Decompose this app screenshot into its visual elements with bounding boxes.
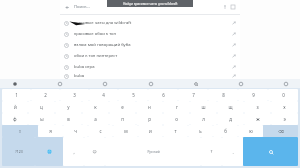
staticText: б bbox=[224, 128, 227, 134]
button[interactable]: щ bbox=[217, 101, 244, 113]
button[interactable]: Profile bbox=[146, 79, 155, 88]
button[interactable]: Sync bbox=[55, 79, 64, 88]
staticText: щ bbox=[228, 104, 233, 110]
button[interactable]: з bbox=[244, 101, 271, 113]
button[interactable]: р bbox=[136, 113, 163, 125]
button[interactable]: н bbox=[136, 101, 163, 113]
button[interactable]: ы bbox=[28, 113, 55, 125]
button[interactable]: й bbox=[2, 101, 28, 113]
button[interactable]: о bbox=[163, 113, 190, 125]
button[interactable]: у bbox=[55, 101, 82, 113]
button[interactable]: Home bbox=[10, 79, 19, 88]
button[interactable]: buba bbox=[60, 72, 240, 79]
staticText: 🌐 bbox=[47, 149, 52, 154]
button[interactable]: красивые обои к топ bbox=[60, 28, 240, 39]
button[interactable]: 2 bbox=[31, 89, 60, 101]
button[interactable]: Downloads bbox=[100, 79, 109, 88]
button[interactable]: ж bbox=[244, 113, 271, 125]
button[interactable]: ?123 bbox=[2, 137, 35, 166]
staticText: 0 bbox=[282, 92, 285, 98]
button[interactable]: Camera search bbox=[229, 3, 237, 11]
staticText: 5 bbox=[132, 92, 135, 98]
button[interactable]: б bbox=[213, 125, 238, 137]
button[interactable]: ؟ bbox=[201, 137, 222, 166]
staticText: ц bbox=[40, 104, 43, 110]
staticText: я bbox=[49, 128, 52, 134]
staticText: buba игра bbox=[74, 64, 95, 70]
staticText: Поиск... bbox=[74, 4, 90, 10]
button[interactable]: м bbox=[113, 125, 138, 137]
staticText: ш bbox=[201, 104, 206, 110]
button[interactable]: Voice search bbox=[221, 3, 229, 11]
staticText: у bbox=[67, 104, 70, 110]
staticText: ?123 bbox=[15, 149, 23, 154]
button[interactable]: п bbox=[109, 113, 136, 125]
button[interactable]: к bbox=[82, 101, 109, 113]
button[interactable]: х bbox=[271, 101, 298, 113]
staticText: ؟ bbox=[210, 149, 213, 154]
button[interactable]: я bbox=[38, 125, 63, 137]
staticText: обои к топ пинтерест bbox=[74, 53, 118, 59]
button[interactable]: Русский bbox=[105, 137, 201, 166]
button[interactable]: красивые чаты для wildcraft bbox=[60, 17, 240, 28]
button[interactable]: Search bbox=[191, 79, 200, 88]
button[interactable]: 8 bbox=[208, 89, 238, 101]
button[interactable]: 9 bbox=[238, 89, 268, 101]
button[interactable]: л bbox=[190, 113, 217, 125]
button[interactable]: д bbox=[217, 113, 244, 125]
staticText: buba bbox=[74, 73, 85, 79]
button[interactable]: е bbox=[109, 101, 136, 113]
button[interactable]: ☺ bbox=[84, 137, 105, 166]
staticText: 7 bbox=[192, 92, 195, 98]
button[interactable]: ч bbox=[63, 125, 88, 137]
button[interactable]: т bbox=[163, 125, 188, 137]
button[interactable]: 6 bbox=[148, 89, 178, 101]
staticText: 3 bbox=[73, 92, 76, 98]
button[interactable]: взлом мой говорящий буба bbox=[60, 39, 240, 50]
button[interactable]: 🌐 bbox=[35, 137, 63, 166]
button[interactable]: Search bbox=[243, 137, 298, 166]
button[interactable]: ь bbox=[188, 125, 213, 137]
button[interactable]: в bbox=[55, 113, 82, 125]
button[interactable]: ш bbox=[190, 101, 217, 113]
button[interactable]: 1 bbox=[2, 89, 31, 101]
staticText: 2 bbox=[44, 92, 47, 98]
staticText: з bbox=[256, 104, 259, 110]
staticText: м bbox=[124, 128, 128, 134]
button[interactable]: и bbox=[138, 125, 163, 137]
button[interactable]: а bbox=[82, 113, 109, 125]
button[interactable]: 7 bbox=[178, 89, 208, 101]
button[interactable]: 4 bbox=[89, 89, 118, 101]
button[interactable]: 3 bbox=[60, 89, 89, 101]
staticText: о bbox=[175, 116, 178, 122]
button[interactable]: More bbox=[281, 79, 290, 88]
button[interactable]: г bbox=[163, 101, 190, 113]
staticText: ж bbox=[256, 116, 260, 122]
staticText: ☺ bbox=[92, 149, 97, 154]
button[interactable]: ф bbox=[2, 113, 28, 125]
button[interactable]: buba игра bbox=[60, 61, 240, 72]
button[interactable]: ц bbox=[28, 101, 55, 113]
button[interactable]: Settings bbox=[236, 79, 245, 88]
button[interactable]: ⇧ bbox=[2, 125, 38, 137]
staticText: а bbox=[94, 116, 97, 122]
button[interactable]: ⌫ bbox=[263, 125, 298, 137]
button[interactable]: обои к топ пинтерест bbox=[60, 50, 240, 61]
button[interactable]: ю bbox=[238, 125, 263, 137]
staticText: с bbox=[99, 128, 102, 134]
staticText: 9 bbox=[252, 92, 255, 98]
staticText: 8 bbox=[222, 92, 225, 98]
staticText: ь bbox=[199, 128, 202, 134]
button[interactable]: Back bbox=[63, 3, 71, 11]
button[interactable]: 5 bbox=[118, 89, 148, 101]
staticText: 6 bbox=[162, 92, 165, 98]
staticText: взлом мой говорящий буба bbox=[74, 42, 131, 48]
button[interactable]: с bbox=[88, 125, 113, 137]
staticText: красивые обои к топ bbox=[74, 31, 117, 37]
button[interactable]: э bbox=[271, 113, 298, 125]
staticText: т bbox=[174, 128, 177, 134]
button[interactable]: 0 bbox=[268, 89, 298, 101]
staticText: ы bbox=[40, 116, 44, 122]
